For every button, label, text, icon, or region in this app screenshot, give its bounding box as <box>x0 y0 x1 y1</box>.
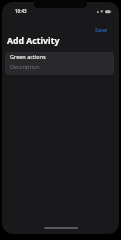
staticText: Green actions <box>10 53 46 60</box>
button[interactable]: Description <box>5 63 114 75</box>
staticText: Add Activity <box>7 35 60 47</box>
button[interactable]: Save <box>92 23 111 36</box>
staticText: Description <box>10 63 40 70</box>
button[interactable]: Green actions <box>5 52 114 63</box>
staticText: 10:43 <box>15 8 27 14</box>
staticText: Save <box>95 26 108 33</box>
